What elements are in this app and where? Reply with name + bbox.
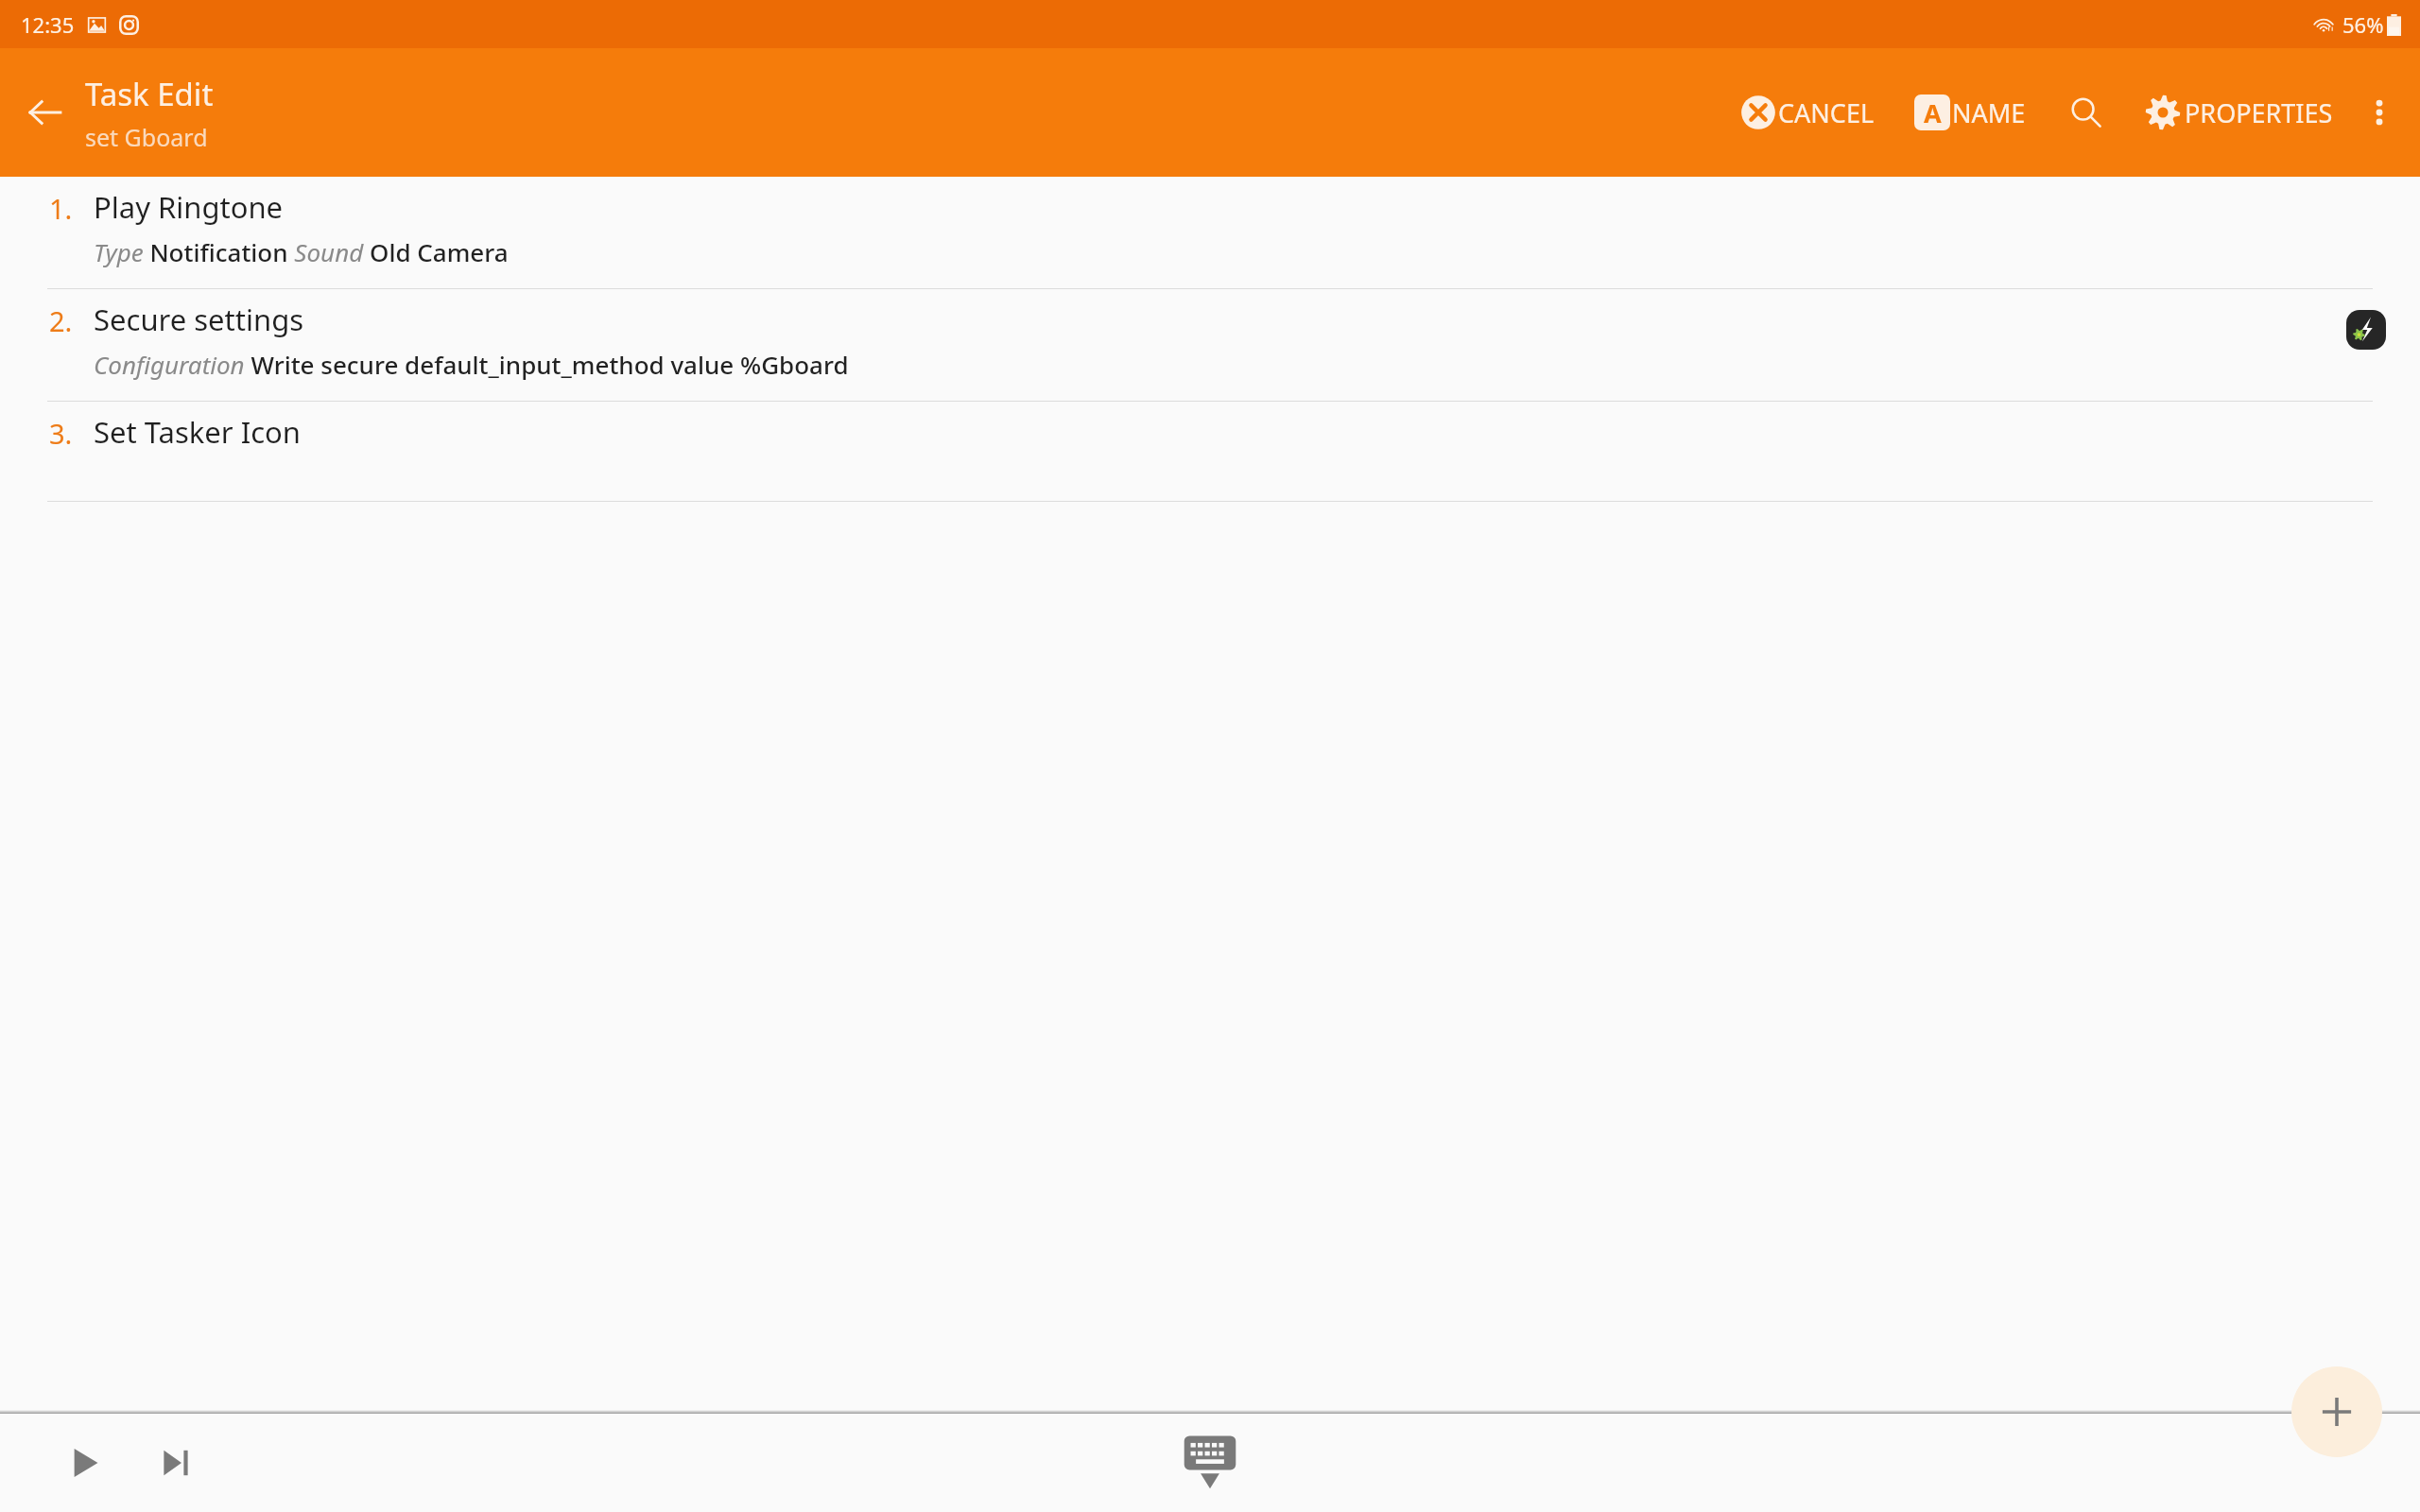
button[interactable]: Back (15, 82, 76, 143)
staticText: 1. (49, 190, 73, 227)
button[interactable]: More options (2352, 85, 2407, 140)
staticText: CANCEL (1778, 95, 1875, 130)
button[interactable]: CANCEL (1731, 81, 1884, 144)
staticText: 12:35 (21, 10, 75, 39)
staticText: Set Tasker Icon (94, 412, 301, 452)
staticText: Secure settings (94, 300, 304, 339)
staticText: NAME (1952, 95, 2026, 130)
button[interactable]: Add action (2291, 1366, 2382, 1457)
button[interactable]: PROPERTIES (2137, 81, 2341, 144)
button[interactable]: Run task (57, 1435, 113, 1491)
button[interactable]: Hide keyboard (1167, 1425, 1253, 1501)
staticText: Configuration Write secure default_input… (94, 348, 849, 381)
button[interactable]: Search (2060, 86, 2113, 139)
staticText: Play Ringtone (94, 187, 284, 227)
staticText: 2. (49, 302, 73, 339)
button[interactable]: Step (147, 1435, 204, 1491)
staticText: 56% (2342, 10, 2384, 39)
staticText: Type Notification Sound Old Camera (94, 235, 509, 268)
button[interactable]: A (1905, 81, 2035, 144)
button[interactable]: 3. (0, 402, 2420, 502)
staticText: A (1924, 95, 1942, 130)
button[interactable]: 1. (0, 177, 2420, 289)
staticText: set Gboard (85, 121, 208, 153)
staticText: PROPERTIES (2185, 95, 2333, 130)
staticText: Task Edit (85, 73, 214, 115)
staticText: 3. (49, 415, 73, 452)
button[interactable]: 2. (0, 289, 2420, 402)
